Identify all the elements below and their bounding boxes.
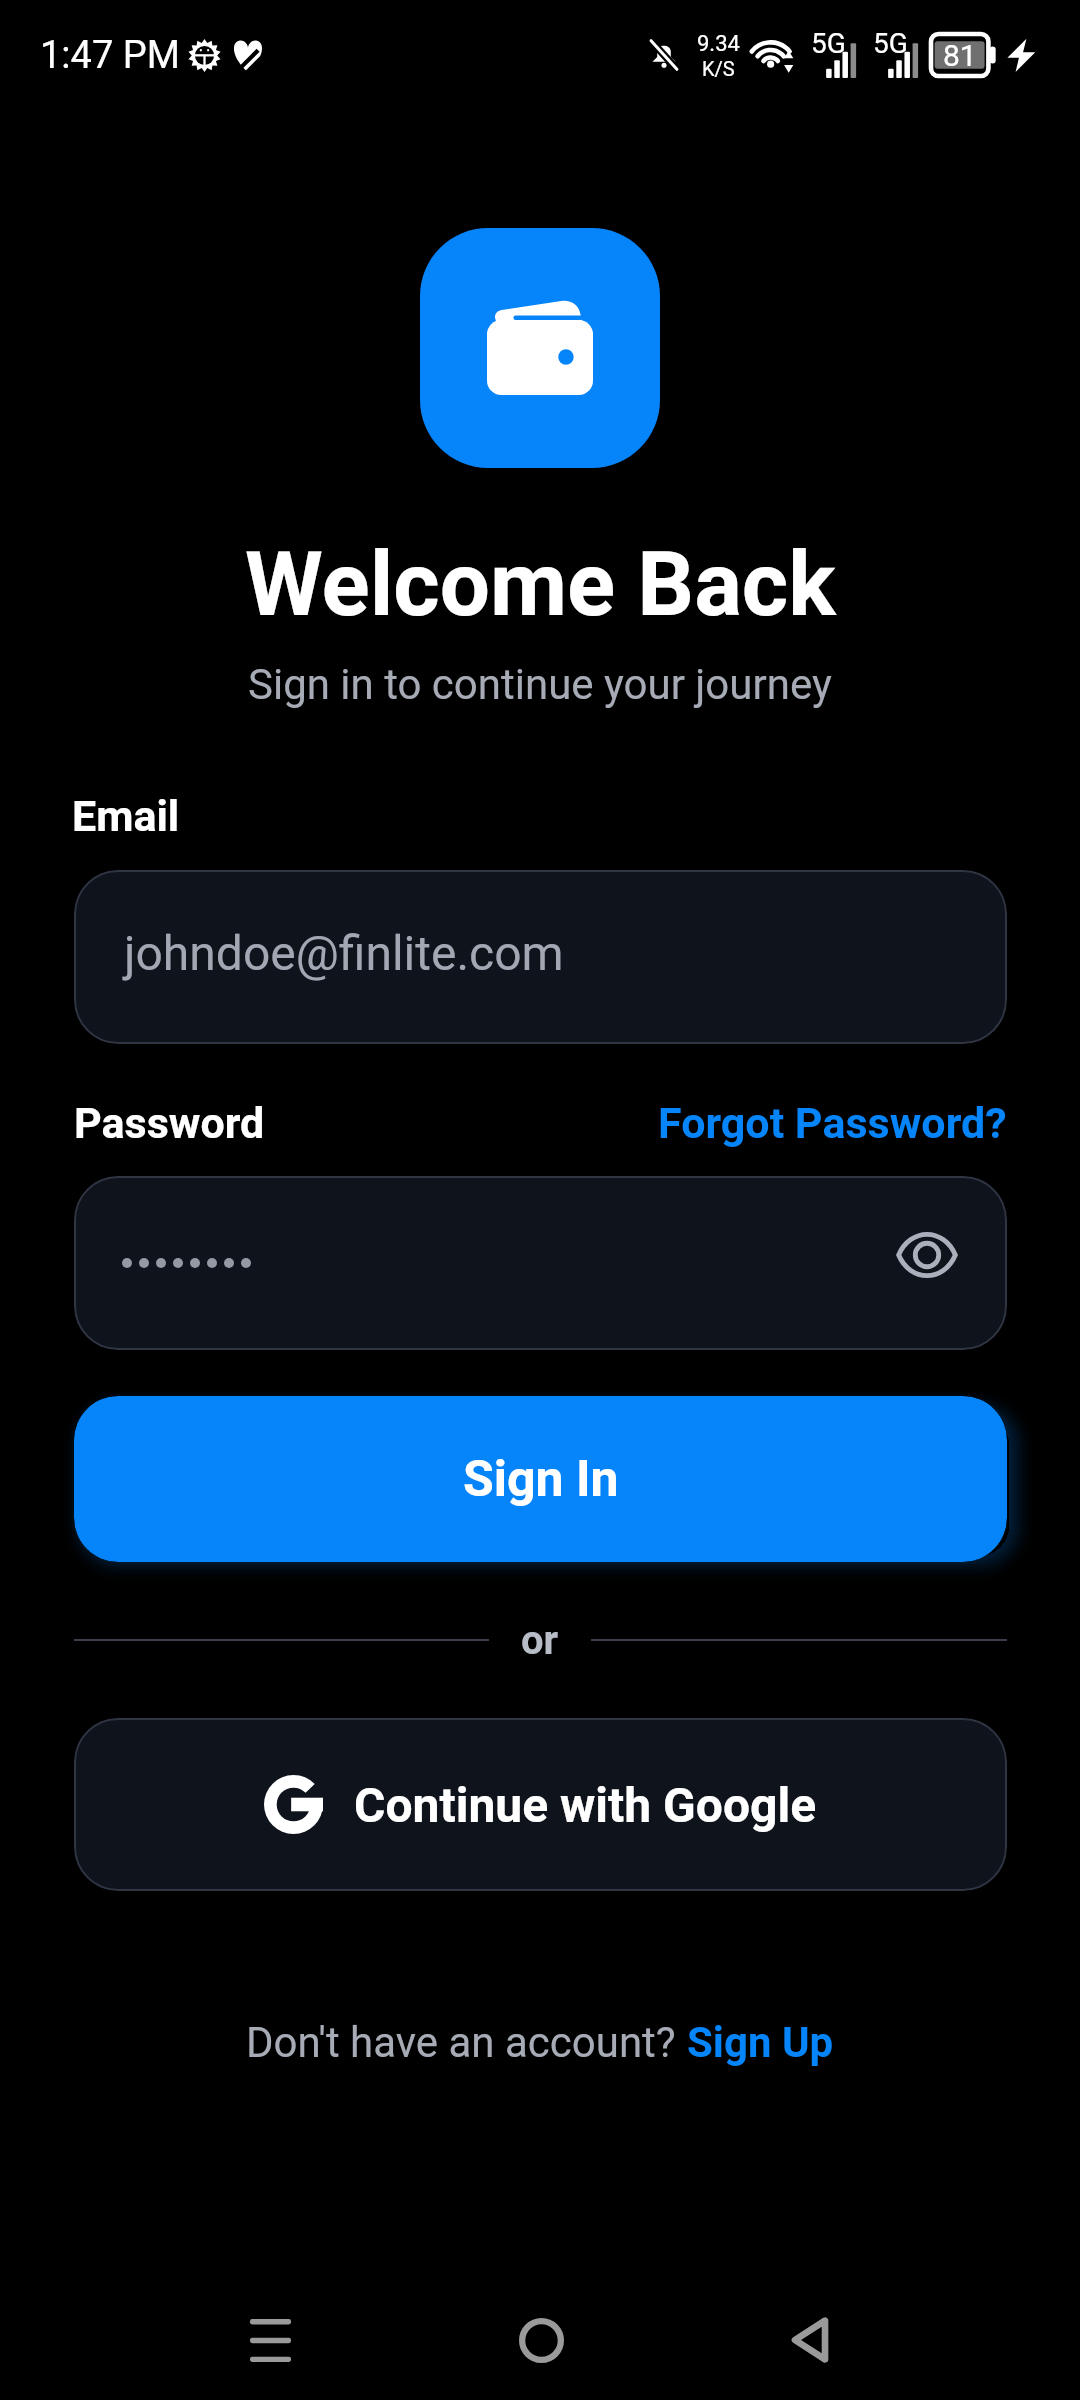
button[interactable]: Recents (210, 2280, 330, 2400)
staticText: Sign Up (687, 2018, 834, 2067)
button[interactable]: Back (749, 2280, 869, 2400)
staticText: or (521, 1617, 559, 1664)
staticText: Don't have an account? (246, 2018, 687, 2067)
button[interactable]: Sign In (74, 1396, 1007, 1562)
staticText: 5G (811, 27, 846, 60)
button[interactable]: Show password (74, 1176, 1007, 1350)
button[interactable]: Show password (887, 1223, 967, 1303)
staticText: K/S (702, 57, 735, 80)
staticText: Continue with Google (354, 1777, 817, 1833)
staticText: 81 (943, 38, 977, 73)
staticText: Email (72, 791, 180, 841)
button[interactable]: Home (481, 2280, 601, 2400)
button[interactable]: Continue with Google (74, 1718, 1007, 1891)
staticText: Welcome Back (245, 532, 836, 636)
button[interactable]: johndoe@finlite.com (74, 870, 1007, 1044)
staticText: 1:47 PM (40, 33, 180, 78)
button[interactable]: Don't have an account? (246, 2018, 834, 2067)
staticText: Forgot Password? (658, 1098, 1007, 1148)
staticText: Sign in to continue your journey (248, 660, 832, 709)
button[interactable]: Forgot Password? (658, 1098, 1007, 1148)
staticText: 9.34 (697, 31, 740, 57)
staticText: Sign In (463, 1450, 619, 1509)
staticText: Password (74, 1098, 265, 1148)
staticText: 5G (873, 27, 908, 60)
staticText: johndoe@finlite.com (124, 925, 564, 981)
